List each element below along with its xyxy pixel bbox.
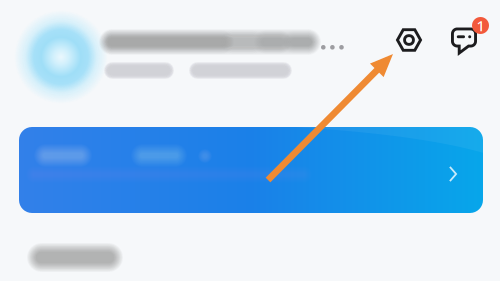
button[interactable]: Messages [443,20,485,62]
staticText: 1 [476,16,484,35]
button[interactable]: Settings [388,19,430,61]
button[interactable] [19,127,483,213]
